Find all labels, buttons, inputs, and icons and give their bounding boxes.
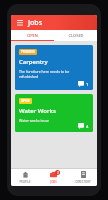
- button[interactable]: PROFILE: [11, 169, 39, 186]
- staticText: 1: [86, 82, 89, 87]
- staticText: 4: [86, 124, 89, 129]
- staticText: Water works issue: [19, 118, 49, 123]
- staticText: CLOSED: [68, 33, 84, 38]
- button[interactable]: Comments: [78, 123, 89, 129]
- staticText: The furniture here needs to be refurbish…: [19, 69, 89, 79]
- button[interactable]: OPEN: [11, 30, 54, 40]
- staticText: JOBS: [50, 180, 57, 184]
- staticText: Jobs: [28, 18, 43, 28]
- staticText: OPEN: [27, 33, 38, 38]
- button[interactable]: CLOSED: [54, 30, 97, 40]
- staticText: Carpentry: [19, 58, 48, 66]
- staticText: PROFILE: [19, 180, 31, 184]
- staticText: PENDING: [21, 50, 35, 54]
- button[interactable]: Comments: [78, 81, 89, 87]
- button[interactable]: OPEN: [15, 94, 93, 132]
- button[interactable]: DIRECTORY: [68, 169, 97, 186]
- staticText: 2: [57, 171, 59, 175]
- staticText: OPEN: [21, 99, 30, 103]
- button[interactable]: Open navigation menu: [14, 17, 25, 28]
- staticText: DIRECTORY: [75, 180, 91, 184]
- staticText: Water Works: [19, 107, 56, 115]
- button[interactable]: 2: [39, 169, 68, 186]
- button[interactable]: PENDING: [15, 45, 93, 90]
